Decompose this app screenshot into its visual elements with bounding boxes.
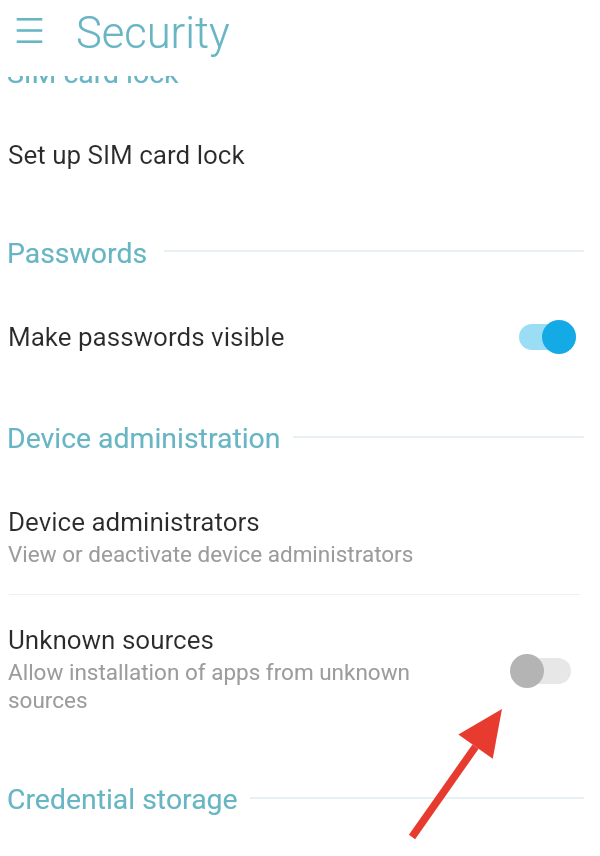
button[interactable]: Switch off — [510, 653, 576, 689]
staticText: SIM card lock — [7, 64, 179, 89]
button[interactable]: Make passwords visible — [0, 313, 600, 361]
staticText: View or deactivate device administrators — [8, 541, 414, 567]
button[interactable]: Unknown sources — [0, 617, 600, 722]
button[interactable]: Switch on — [510, 319, 576, 355]
button[interactable]: Open navigation menu — [5, 6, 53, 54]
staticText: Passwords — [7, 237, 148, 270]
button[interactable]: Set up SIM card lock — [0, 132, 600, 178]
staticText: Security — [76, 8, 230, 59]
staticText: Set up SIM card lock — [8, 140, 245, 170]
staticText: Credential storage — [7, 783, 238, 816]
staticText: Device administration — [7, 422, 281, 455]
button[interactable]: Device administrators — [0, 499, 600, 575]
staticText: Device administrators — [8, 507, 260, 537]
staticText: Allow installation of apps from unknown … — [8, 659, 411, 714]
staticText: Unknown sources — [8, 625, 214, 655]
staticText: Make passwords visible — [8, 322, 510, 352]
